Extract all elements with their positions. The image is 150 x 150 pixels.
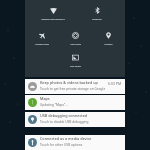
staticText: Touch to disable USB debugging — [40, 120, 89, 124]
staticText: Touch for other USB options — [40, 143, 83, 147]
button[interactable]: Bluetooth — [75, 0, 119, 21]
staticText: Airplane mode — [35, 43, 49, 46]
staticText: Bluetooth — [92, 18, 102, 21]
button[interactable]: Keep photos & videos backed up — [25, 79, 125, 94]
staticText: 6:03 PM — [108, 81, 122, 86]
staticText: Auto-rotate — [70, 43, 81, 46]
button[interactable]: Maps — [25, 95, 125, 110]
button[interactable]: Auto rotate — [59, 22, 92, 46]
button[interactable]: USB debugging connected — [25, 112, 125, 127]
button[interactable]: Connected as a media device — [25, 135, 125, 150]
staticText: Maps — [40, 96, 50, 101]
button[interactable]: Wi-Fi — [31, 0, 75, 21]
staticText: Cast screen — [70, 65, 81, 68]
staticText: Updating “Maps”… — [40, 103, 68, 107]
staticText: USB debugging connected — [40, 113, 88, 118]
staticText: Hotspots WiFi Externes O — [41, 18, 65, 21]
staticText: Touch to get free private storage on Goo… — [40, 87, 106, 91]
button[interactable]: Cast screen — [59, 44, 92, 68]
staticText: Connected as a media device — [40, 136, 92, 141]
staticText: Location — [104, 43, 113, 46]
staticText: Keep photos & videos backed up — [40, 80, 98, 85]
button[interactable]: Airplane mode — [25, 22, 59, 46]
button[interactable]: Location — [92, 22, 125, 46]
